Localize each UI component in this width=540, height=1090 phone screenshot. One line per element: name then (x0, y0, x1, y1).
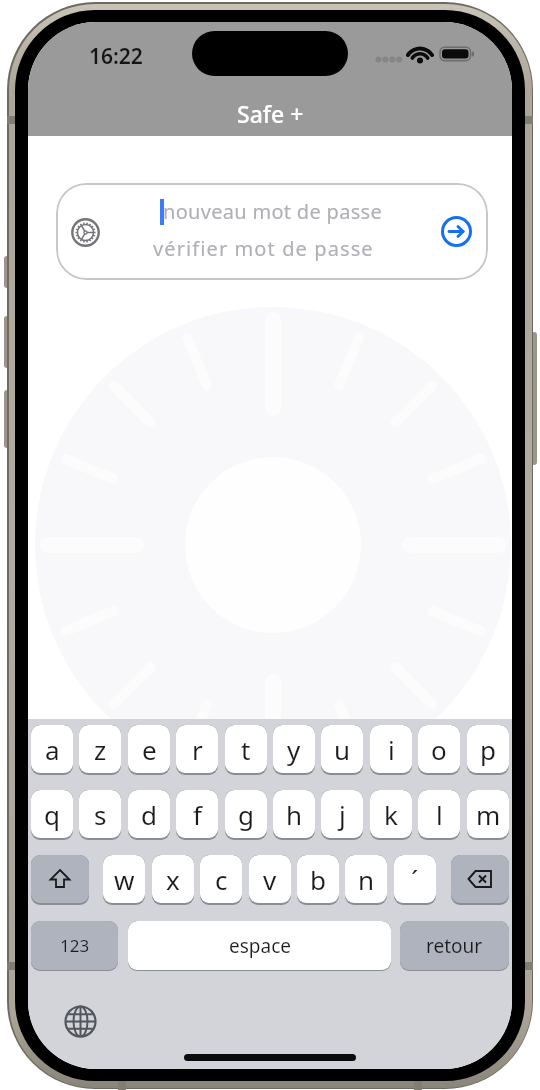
button[interactable]: j (321, 790, 363, 840)
button[interactable]: p (467, 725, 509, 775)
button[interactable] (56, 183, 488, 280)
button[interactable]: i (370, 725, 412, 775)
staticText: o (431, 732, 447, 767)
staticText: b (310, 862, 326, 897)
staticText: g (238, 797, 254, 832)
staticText: 16:22 (89, 42, 143, 70)
staticText: nouveau mot de passe (163, 198, 382, 225)
button[interactable]: ´ (394, 855, 436, 905)
staticText: Safe + (237, 98, 304, 128)
staticText: p (480, 732, 496, 767)
button[interactable]: g (225, 790, 267, 840)
button[interactable]: r (176, 725, 218, 775)
button[interactable]: a (31, 725, 73, 775)
staticText: e (142, 732, 157, 767)
staticText: v (263, 862, 277, 897)
staticText: r (192, 732, 203, 767)
button[interactable]: t (225, 725, 267, 775)
button[interactable]: m (467, 790, 509, 840)
button[interactable]: q (31, 790, 73, 840)
button[interactable]: w (103, 855, 145, 905)
staticText: m (476, 797, 501, 832)
staticText: f (193, 797, 202, 832)
button[interactable] (64, 1005, 97, 1038)
button[interactable] (451, 855, 509, 905)
button[interactable]: x (152, 855, 194, 905)
staticText: h (286, 797, 303, 832)
staticText: u (334, 732, 351, 767)
staticText: k (384, 797, 398, 832)
button[interactable]: n (345, 855, 387, 905)
staticText: n (358, 862, 375, 897)
staticText: c (215, 862, 228, 897)
button[interactable]: l (418, 790, 460, 840)
button[interactable]: o (418, 725, 460, 775)
button[interactable]: f (176, 790, 218, 840)
staticText: s (94, 797, 107, 832)
staticText: j (339, 797, 346, 832)
staticText: t (241, 732, 251, 767)
button[interactable]: y (273, 725, 315, 775)
button[interactable]: b (297, 855, 339, 905)
button[interactable]: d (128, 790, 170, 840)
staticText: 123 (60, 934, 90, 957)
button[interactable]: retour (400, 921, 509, 971)
staticText: a (45, 732, 60, 767)
staticText: z (94, 732, 107, 767)
button[interactable] (70, 217, 101, 248)
staticText: i (388, 732, 395, 767)
staticText: espace (229, 933, 291, 959)
staticText: d (141, 797, 157, 832)
staticText: vérifier mot de passe (153, 235, 374, 262)
staticText: ´ (411, 862, 419, 897)
staticText: w (114, 862, 135, 897)
button[interactable] (31, 855, 89, 905)
button[interactable]: e (128, 725, 170, 775)
button[interactable]: c (200, 855, 242, 905)
button[interactable]: u (321, 725, 363, 775)
button[interactable]: z (79, 725, 121, 775)
staticText: l (436, 797, 443, 832)
staticText: y (287, 732, 301, 767)
button[interactable] (439, 214, 474, 249)
button[interactable]: 123 (31, 921, 118, 971)
staticText: q (44, 797, 60, 832)
button[interactable]: v (249, 855, 291, 905)
button[interactable]: espace (128, 921, 391, 971)
staticText: x (166, 862, 180, 897)
button[interactable]: k (370, 790, 412, 840)
staticText: retour (426, 933, 483, 959)
button[interactable]: h (273, 790, 315, 840)
button[interactable]: s (79, 790, 121, 840)
